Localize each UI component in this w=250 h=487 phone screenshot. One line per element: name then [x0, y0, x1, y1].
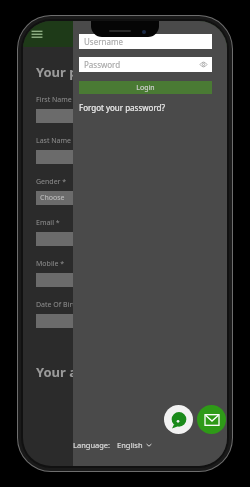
button[interactable]: [36, 232, 124, 246]
button[interactable]: Show password: [200, 61, 207, 68]
staticText: Gender *: [36, 177, 67, 187]
button[interactable]: Language:: [73, 440, 152, 450]
button[interactable]: [36, 109, 124, 123]
button[interactable]: Menu: [30, 27, 44, 41]
staticText: Login: [136, 83, 155, 93]
staticText: Choose: [40, 193, 65, 203]
button[interactable]: Forgot your password?: [79, 102, 165, 113]
button[interactable]: [36, 314, 124, 328]
button[interactable]: Login: [79, 81, 212, 94]
staticText: English: [117, 440, 143, 450]
staticText: Username: [84, 36, 123, 47]
staticText: Password: [84, 59, 121, 70]
button[interactable]: Username: [79, 34, 212, 49]
staticText: Your address: [36, 363, 120, 381]
staticText: Last Name *: [36, 136, 77, 146]
button[interactable]: [36, 150, 124, 164]
staticText: Mobile *: [36, 259, 65, 269]
staticText: Email *: [36, 218, 60, 228]
button[interactable]: Password: [79, 57, 212, 72]
staticText: First Name *: [36, 95, 78, 105]
staticText: Language:: [73, 440, 111, 450]
button[interactable]: Choose: [36, 191, 124, 205]
button[interactable]: Menu: [23, 21, 227, 47]
staticText: Your profile: [36, 63, 112, 81]
staticText: Date Of Birth *: [36, 300, 85, 310]
button[interactable]: [36, 273, 124, 287]
button[interactable]: WhatsApp chat: [164, 405, 193, 434]
button[interactable]: Email: [197, 405, 226, 434]
